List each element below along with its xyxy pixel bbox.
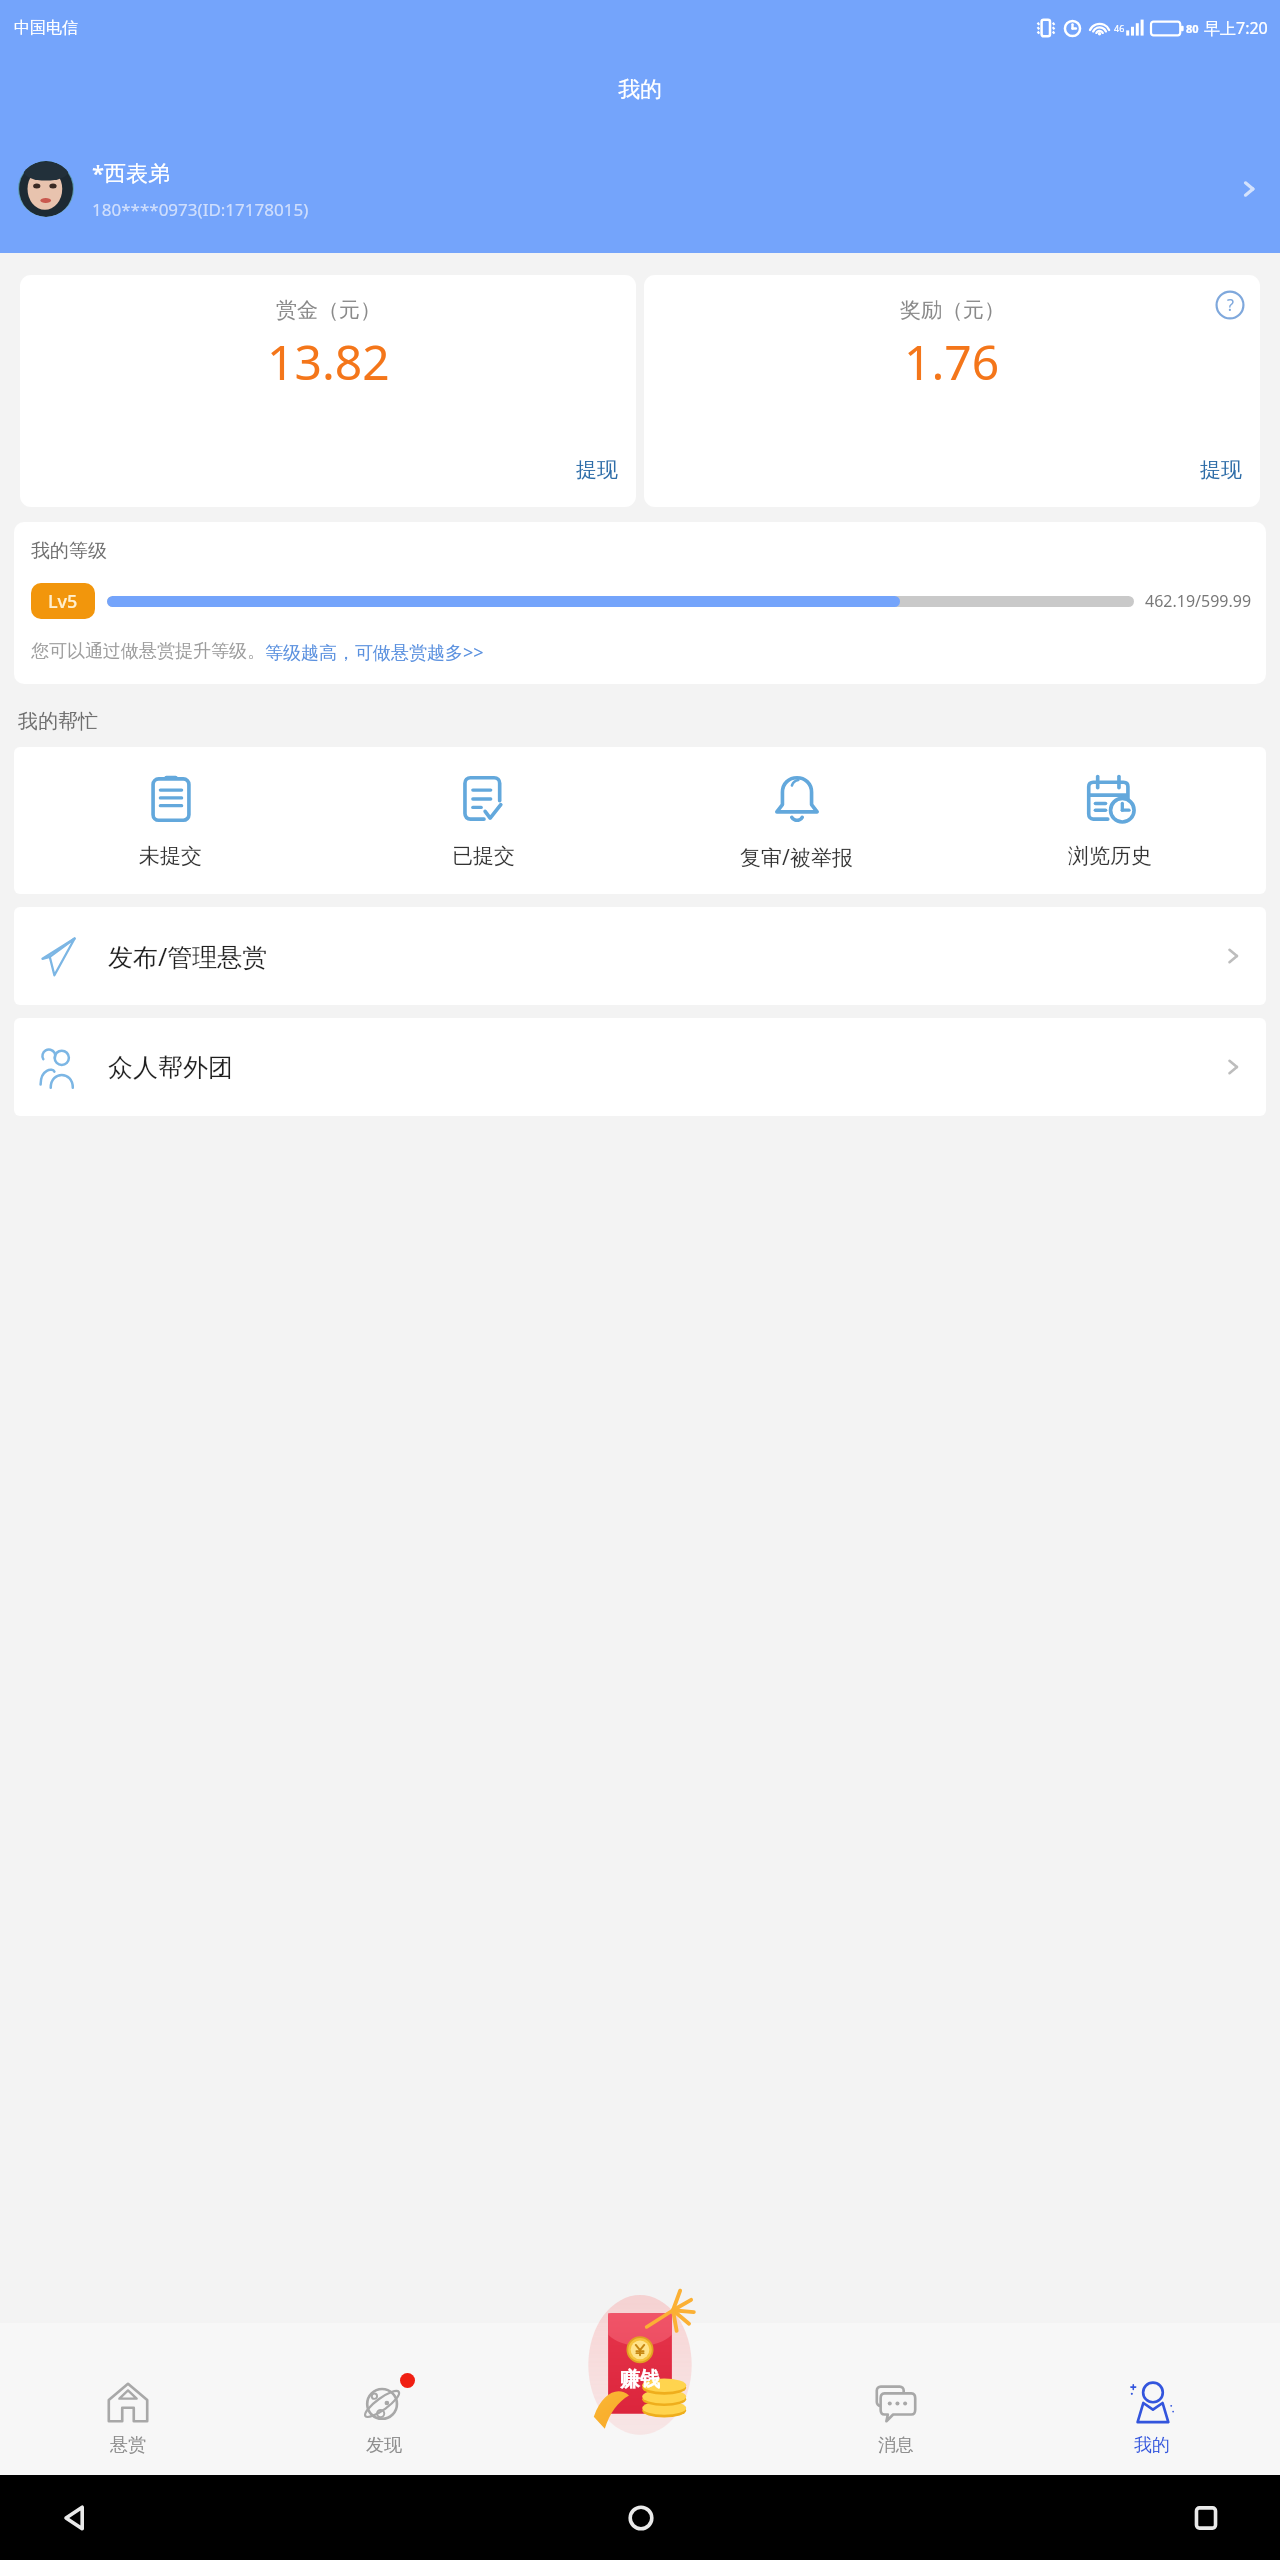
button[interactable]: *西表弟: [0, 125, 1280, 253]
button[interactable]: 提现: [576, 457, 618, 483]
staticText: 80: [1186, 21, 1199, 36]
staticText: 我的帮忙: [18, 709, 98, 734]
staticText: 浏览历史: [1068, 843, 1152, 869]
staticText: Lv5: [48, 589, 78, 614]
staticText: 13.82: [267, 329, 390, 394]
button[interactable]: 赚钱: [585, 2289, 695, 2441]
staticText: 赚钱: [620, 2367, 660, 2392]
staticText: 46: [1114, 22, 1125, 34]
staticText: 发布/管理悬赏: [108, 939, 268, 973]
staticText: 462.19/599.99: [1145, 590, 1252, 612]
staticText: 180****0973(ID:17178015): [92, 198, 309, 221]
staticText: 我的: [618, 76, 662, 104]
staticText: *西表弟: [92, 157, 171, 187]
staticText: 赏金（元）: [276, 297, 381, 323]
staticText: 悬赏: [110, 2434, 146, 2457]
button[interactable]: 众人帮外团: [14, 1018, 1266, 1116]
button[interactable]: 复审/被举报: [640, 769, 953, 874]
button[interactable]: 等级越高，可做悬赏越多>>: [265, 640, 484, 665]
button[interactable]: 提现: [1200, 457, 1242, 483]
staticText: 我的: [1134, 2434, 1170, 2457]
staticText: 奖励（元）: [900, 297, 1005, 323]
staticText: 中国电信: [14, 18, 78, 38]
other: Home: [626, 2503, 656, 2533]
staticText: 消息: [878, 2434, 914, 2457]
button[interactable]: 发布/管理悬赏: [14, 907, 1266, 1005]
button[interactable]: 奖励（元）: [644, 275, 1260, 507]
button[interactable]: 已提交: [327, 769, 640, 871]
staticText: 1.76: [904, 329, 1000, 394]
staticText: 早上7:20: [1204, 17, 1268, 39]
button[interactable]: 我的: [1024, 2378, 1280, 2475]
staticText: 您可以通过做悬赏提升等级。: [31, 640, 265, 663]
staticText: 发现: [366, 2434, 402, 2457]
button[interactable]: 浏览历史: [953, 769, 1266, 871]
staticText: 已提交: [452, 843, 515, 869]
button[interactable]: 发现: [256, 2378, 512, 2475]
button[interactable]: 悬赏: [0, 2378, 256, 2475]
button[interactable]: 消息: [768, 2378, 1024, 2475]
other: Back: [60, 2503, 90, 2533]
staticText: ?: [1227, 294, 1234, 316]
staticText: 众人帮外团: [108, 1052, 233, 1083]
button[interactable]: 未提交: [14, 769, 327, 871]
button[interactable]: 赏金（元）: [20, 275, 636, 507]
staticText: 未提交: [139, 843, 202, 869]
button[interactable]: Help: [1214, 289, 1246, 321]
staticText: 复审/被举报: [740, 843, 853, 872]
staticText: 我的等级: [31, 539, 107, 563]
other: Recents: [1192, 2504, 1220, 2532]
